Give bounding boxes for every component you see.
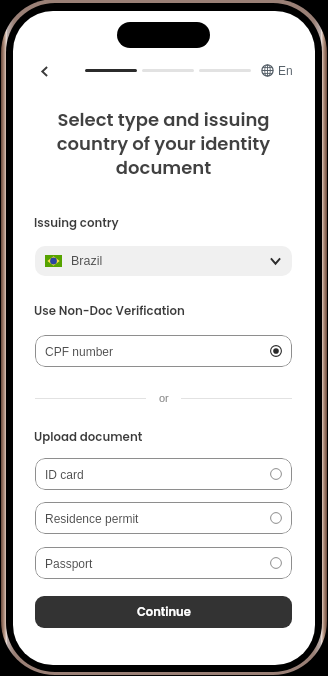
staticText: Brazil: [71, 254, 103, 268]
button[interactable]: Residence permit: [35, 502, 292, 534]
button[interactable]: Passport: [35, 547, 292, 579]
staticText: or: [159, 392, 169, 404]
staticText: Upload document: [34, 429, 143, 446]
staticText: Continue: [137, 604, 191, 620]
staticText: Select type and issuing country of your …: [33, 107, 294, 180]
staticText: Residence permit: [45, 512, 139, 525]
staticText: Use Non-Doc Verification: [34, 303, 185, 320]
button[interactable]: ID card: [35, 458, 292, 490]
staticText: ID card: [45, 468, 84, 481]
staticText: En: [278, 64, 293, 77]
button[interactable]: Back: [33, 60, 55, 82]
button[interactable]: En: [261, 61, 293, 80]
button[interactable]: Continue: [35, 596, 292, 628]
staticText: Issuing contry: [34, 215, 119, 232]
staticText: Passport: [45, 557, 93, 570]
staticText: CPF number: [45, 345, 114, 358]
button[interactable]: Brazil: [35, 246, 292, 276]
button[interactable]: CPF number: [35, 335, 292, 367]
